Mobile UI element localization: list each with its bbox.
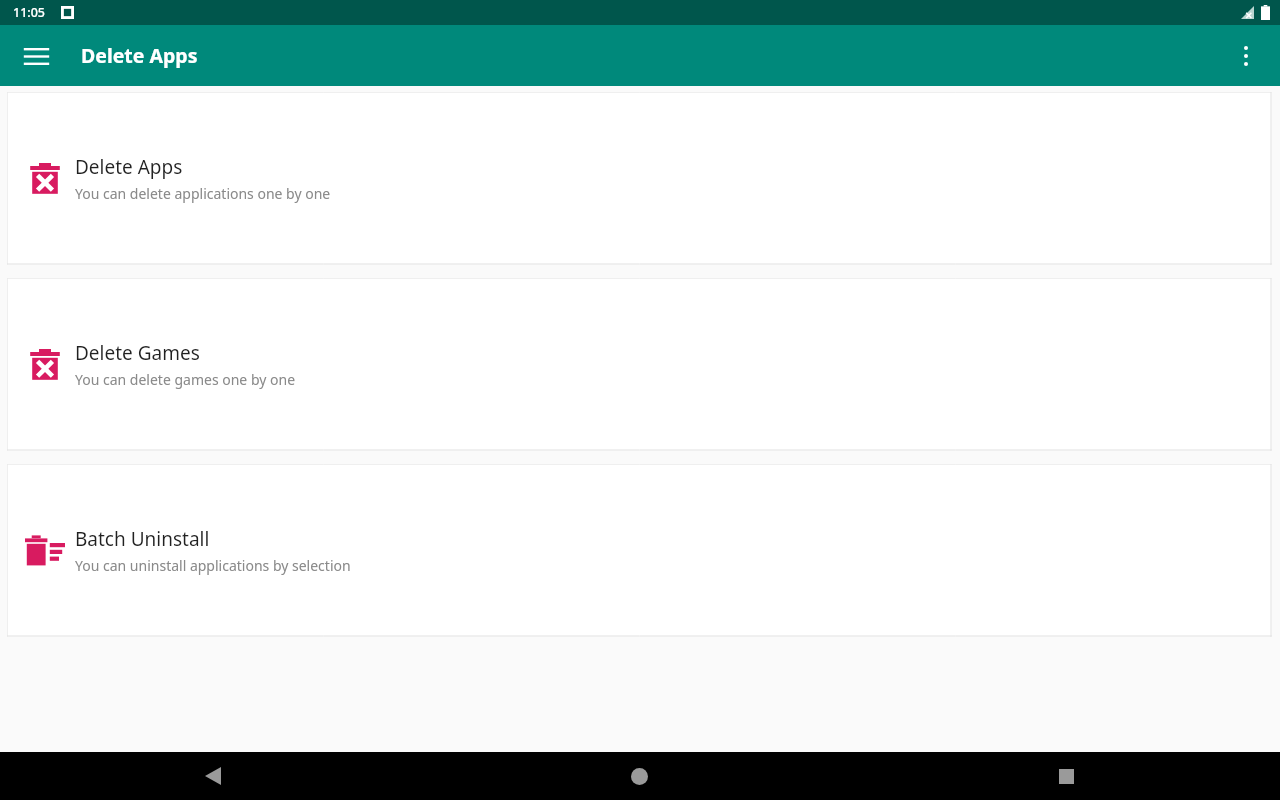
button[interactable]: Home	[426, 752, 853, 800]
button[interactable]: Open navigation drawer	[12, 32, 60, 80]
button[interactable]: More options	[1222, 32, 1270, 80]
staticText: You can delete games one by one	[75, 370, 296, 389]
button[interactable]: Delete Games	[7, 278, 1272, 451]
staticText: Delete Games	[75, 340, 200, 366]
staticText: 11:05	[13, 4, 46, 21]
button[interactable]: Recent apps	[853, 752, 1280, 800]
button[interactable]: Batch Uninstall	[7, 464, 1272, 637]
staticText: You can delete applications one by one	[75, 184, 331, 203]
staticText: Delete Apps	[75, 154, 183, 180]
staticText: You can uninstall applications by select…	[75, 556, 351, 575]
staticText: Delete Apps	[81, 42, 198, 69]
button[interactable]: Delete Apps	[7, 92, 1272, 265]
button[interactable]: Back	[0, 752, 426, 800]
staticText: Batch Uninstall	[75, 526, 210, 552]
